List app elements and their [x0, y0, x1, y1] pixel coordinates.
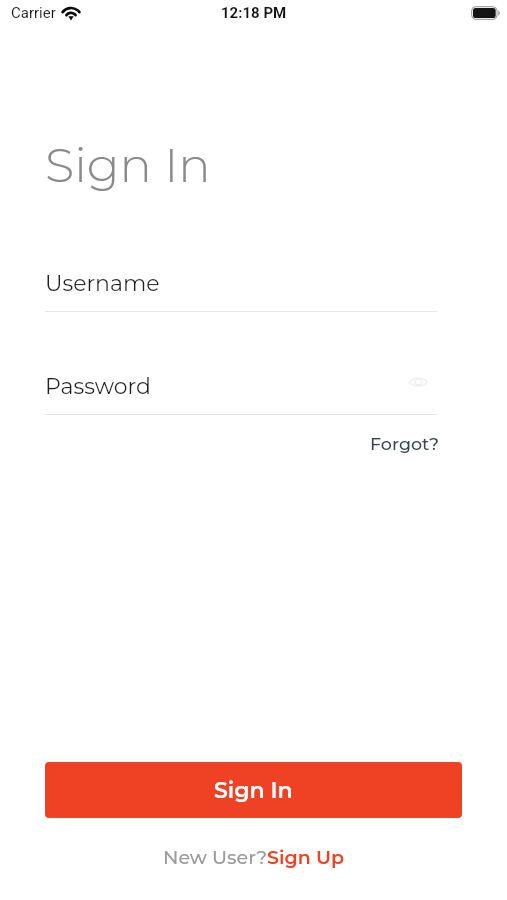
button[interactable]: New User?Sign Up: [163, 846, 344, 869]
staticText: New User?Sign Up: [163, 846, 344, 869]
staticText: 12:18 PM: [221, 4, 287, 22]
staticText: Username: [45, 270, 160, 297]
button[interactable]: Password: [45, 373, 437, 415]
button[interactable]: Sign In: [45, 762, 462, 818]
button[interactable]: Username: [45, 270, 437, 312]
staticText: Sign In: [45, 136, 211, 195]
staticText: Sign In: [214, 777, 293, 804]
button[interactable]: Show password: [403, 367, 433, 397]
staticText: Forgot?: [370, 433, 440, 454]
staticText: Carrier: [11, 4, 56, 22]
staticText: Password: [45, 373, 151, 400]
button[interactable]: Forgot?: [370, 433, 440, 454]
